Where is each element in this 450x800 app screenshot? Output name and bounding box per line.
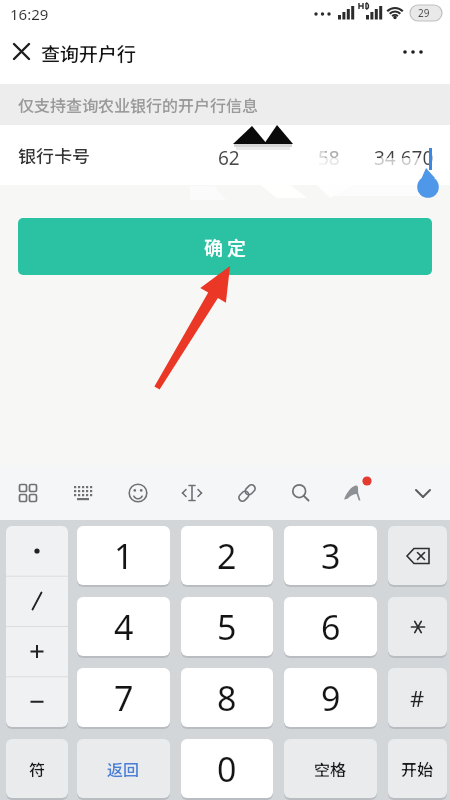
button[interactable] [172,473,212,513]
button[interactable]: 9 [284,668,377,727]
staticText: 8 [217,675,237,721]
button[interactable] [227,473,267,513]
button[interactable] [6,36,38,68]
staticText: 符 [29,757,46,780]
button[interactable] [388,526,447,585]
staticText: 查询开户行 [41,39,137,67]
button[interactable] [335,473,375,513]
staticText: 返回 [107,757,140,780]
button[interactable] [63,473,103,513]
staticText: 7 [114,675,134,721]
staticText: 2 [217,533,237,579]
button[interactable]: 3 [284,526,377,585]
button[interactable]: 符 [6,739,68,798]
button[interactable] [118,473,158,513]
staticText: 仅支持查询农业银行的开户行信息 [18,93,259,116]
staticText: 确 定 [204,233,247,261]
staticText: 34 670 [374,145,434,171]
staticText: 开始 [401,757,434,780]
button[interactable] [403,473,443,513]
staticText: 0 [217,746,237,792]
button[interactable] [394,36,434,68]
staticText: 银行卡号 [18,142,90,168]
staticText: 4 [114,604,134,650]
staticText: 58 [318,145,340,171]
staticText: 6 [321,604,341,650]
button[interactable] [388,597,447,656]
button[interactable]: 8 [181,668,273,727]
staticText: 9 [321,675,341,721]
button[interactable] [6,526,68,727]
staticText: 1 [114,533,134,579]
button[interactable]: 空格 [284,739,377,798]
staticText: 3 [321,533,341,579]
button[interactable]: 1 [77,526,170,585]
staticText: 62 [218,145,240,171]
button[interactable]: 确 定 [18,218,432,275]
button[interactable]: 0 [181,739,273,798]
staticText: 29 [418,6,430,20]
staticText: 空格 [314,757,347,780]
button[interactable]: 返回 [77,739,170,798]
button[interactable]: 7 [77,668,170,727]
button[interactable] [281,473,321,513]
button[interactable]: 开始 [388,739,447,798]
button[interactable]: 银行卡号 [0,125,450,185]
button[interactable]: 2 [181,526,273,585]
button[interactable] [8,473,48,513]
button[interactable]: # [388,668,447,727]
button[interactable]: 5 [181,597,273,656]
staticText: 16:29 [10,4,49,24]
button[interactable]: 6 [284,597,377,656]
staticText: 5 [217,604,237,650]
button[interactable]: 4 [77,597,170,656]
staticText: # [410,683,425,713]
